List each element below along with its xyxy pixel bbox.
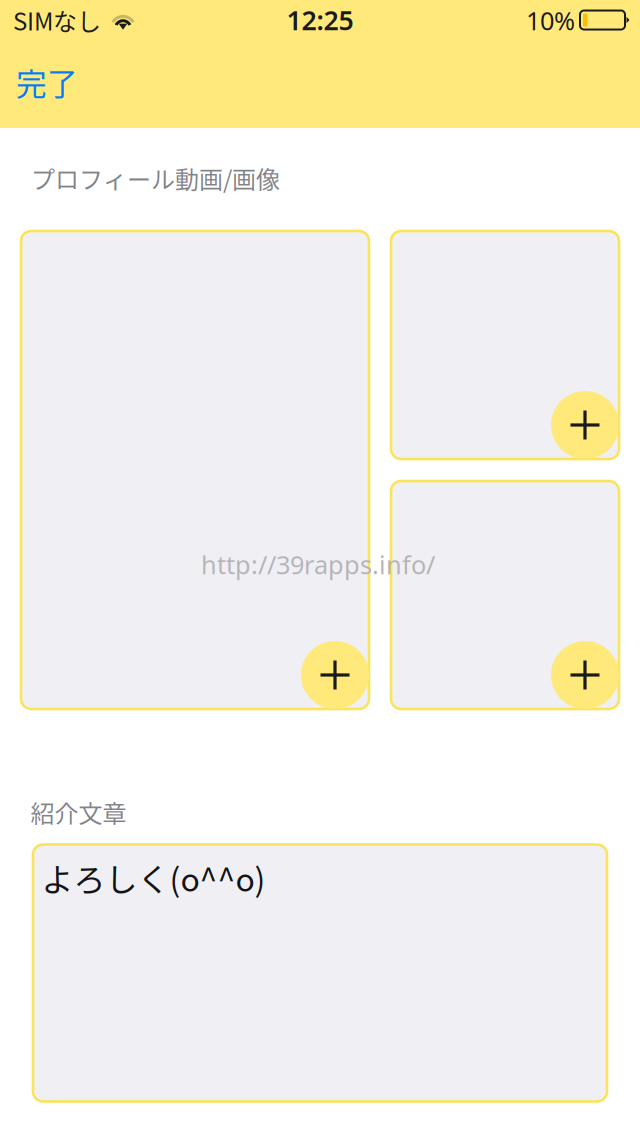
button[interactable]: 写真・動画を追加	[551, 391, 619, 459]
staticText: SIMなし	[13, 3, 101, 37]
staticText: 紹介文章	[30, 795, 126, 829]
staticText: よろしく(o^^o)	[41, 854, 265, 901]
staticText: 10%	[526, 4, 575, 37]
staticText: 12:25	[286, 2, 353, 38]
staticText: http://39rapps.info/	[201, 548, 435, 581]
button[interactable]: 写真・動画を追加	[301, 641, 369, 709]
staticText: 完了	[16, 60, 78, 104]
button[interactable]: 完了	[0, 52, 122, 112]
staticText: プロフィール動画/画像	[31, 161, 280, 195]
button[interactable]: よろしく(o^^o)	[33, 844, 607, 1101]
button[interactable]: 写真・動画を追加	[551, 641, 619, 709]
